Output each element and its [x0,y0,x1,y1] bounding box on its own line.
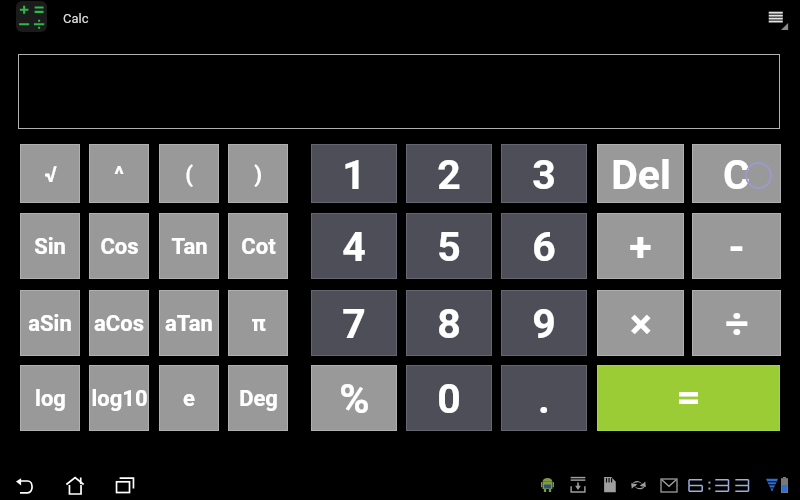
staticText: aSin [28,311,72,337]
staticText: 9 [532,300,556,348]
button[interactable]: . [501,365,587,431]
staticText: 5 [437,223,461,271]
staticText: Calc [63,11,89,26]
button[interactable]: 6 [501,213,587,279]
button[interactable]: 2 [406,144,492,203]
button[interactable]: + [597,213,684,279]
button[interactable]: Back [3,462,45,500]
staticText: C [723,151,750,199]
staticText: 1 [342,151,366,199]
button[interactable]: 9 [501,290,587,356]
button[interactable]: Tan [159,213,219,279]
button[interactable]: Recent apps [104,462,146,500]
staticText: ) [254,162,262,188]
staticText: e [183,386,195,412]
button[interactable]: C [692,144,781,203]
button[interactable]: More options [762,4,794,36]
staticText: 0 [437,375,461,423]
staticText: 7 [342,300,366,348]
button[interactable]: aSin [20,290,80,356]
button[interactable]: 0 [406,365,492,431]
button[interactable]: aTan [159,290,219,356]
staticText: 2 [437,151,461,199]
staticText: √ [44,162,57,188]
staticText: 3 [532,151,556,199]
button[interactable]: ÷ [692,290,781,356]
staticText: ^ [114,162,124,188]
staticText: log10 [91,386,148,412]
button[interactable]: Status bar [533,462,800,500]
staticText: Sin [34,234,66,260]
staticText: π [251,311,266,337]
staticText: 6 [532,223,556,271]
button[interactable]: 1 [311,144,397,203]
button[interactable]: √ [20,144,80,203]
button[interactable]: % [311,365,397,431]
button[interactable]: Home [54,462,96,500]
staticText: ÷ [725,300,749,348]
staticText: 8 [437,300,461,348]
button[interactable]: aCos [89,290,149,356]
staticText: aTan [165,311,213,337]
staticText: . [538,375,550,423]
button[interactable]: 4 [311,213,397,279]
button[interactable]: Del [597,144,684,203]
staticText: Cos [100,234,139,260]
button[interactable]: - [692,213,781,279]
button[interactable]: π [228,290,288,356]
button[interactable]: Cos [89,213,149,279]
button[interactable]: log [20,365,80,431]
staticText: - [728,223,745,271]
button[interactable]: 3 [501,144,587,203]
button[interactable]: Calculator app icon [16,1,47,32]
button[interactable]: Sin [20,213,80,279]
staticText: Deg [239,386,278,412]
button[interactable]: 5 [406,213,492,279]
button[interactable]: × [597,290,684,356]
button[interactable]: ( [159,144,219,203]
button[interactable]: e [159,365,219,431]
staticText: + [629,223,652,271]
staticText: × [630,300,652,348]
button[interactable] [597,365,780,431]
button[interactable]: Deg [228,365,288,431]
staticText: log [35,386,66,412]
button[interactable]: ) [228,144,288,203]
staticText: aCos [94,311,144,337]
button[interactable]: 8 [406,290,492,356]
staticText: Tan [171,234,208,260]
button[interactable]: log10 [89,365,149,431]
staticText: 4 [342,223,366,271]
button[interactable]: ^ [89,144,149,203]
staticText: Del [611,151,671,199]
button[interactable]: Cot [228,213,288,279]
staticText: Cot [241,234,276,260]
button[interactable] [18,54,780,129]
staticText: % [339,375,370,423]
button[interactable]: 7 [311,290,397,356]
staticText: ( [185,162,193,188]
